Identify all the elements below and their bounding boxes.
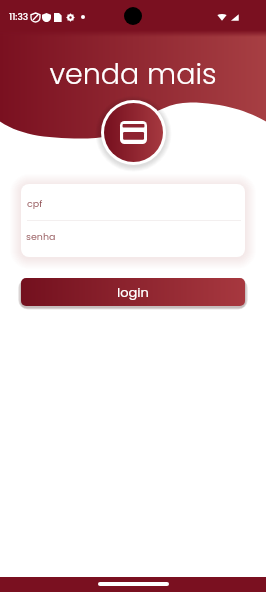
staticText: senha [26, 230, 56, 243]
button[interactable]: Cartao [104, 103, 163, 162]
staticText: cpf [27, 197, 43, 210]
staticText: venda mais [49, 54, 217, 94]
staticText: login [117, 283, 149, 301]
button[interactable]: cpf [21, 184, 245, 220]
staticText: 11:33 [9, 11, 29, 24]
button[interactable]: login [21, 278, 245, 306]
button[interactable]: senha [21, 221, 245, 257]
